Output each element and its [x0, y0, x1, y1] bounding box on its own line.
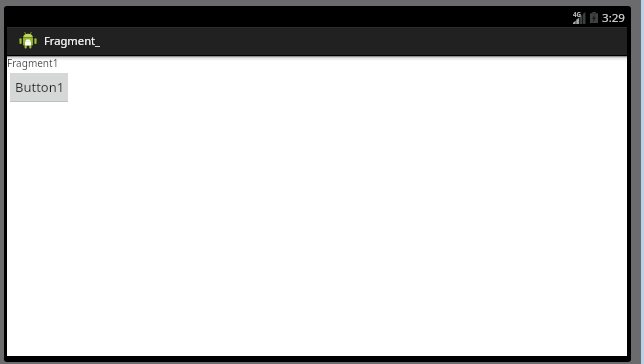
other: App icon — [19, 31, 37, 49]
staticText: 4G — [573, 10, 582, 18]
staticText: Fragment_ — [44, 33, 101, 48]
staticText: Fragment1 — [7, 56, 59, 70]
button[interactable]: Button1 — [10, 73, 68, 102]
button[interactable]: App icon — [7, 27, 115, 55]
staticText: Button1 — [15, 78, 65, 96]
staticText: 3:29 — [602, 10, 626, 26]
